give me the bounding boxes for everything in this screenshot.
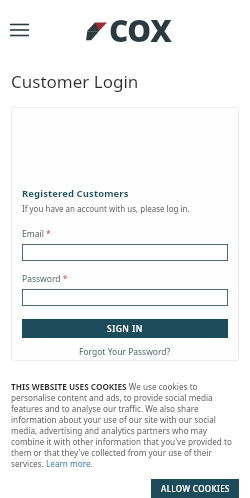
staticText: Registered Customers [22,187,129,200]
button[interactable]: Text field [22,244,228,261]
staticText: If you have an account with us, please l… [22,203,190,214]
staticText: COX [109,10,172,51]
button[interactable]: Forgot Your Password? [79,346,171,358]
staticText: Customer Login [11,70,139,93]
button[interactable]: ALLOW COOKIES [151,479,239,498]
staticText: SIGN IN [107,323,143,335]
button[interactable]: Open navigation menu [4,15,34,45]
staticText: Email * [22,228,51,240]
button[interactable]: SIGN IN [22,319,228,338]
staticText: Password * [22,273,68,285]
button[interactable]: Text field [22,289,228,306]
staticText: ALLOW COOKIES [161,483,230,494]
staticText: Forgot Your Password? [79,346,171,358]
staticText: THIS WEBSITE USES COOKIES We use cookies… [11,381,239,469]
button[interactable]: Cox home [86,10,172,51]
